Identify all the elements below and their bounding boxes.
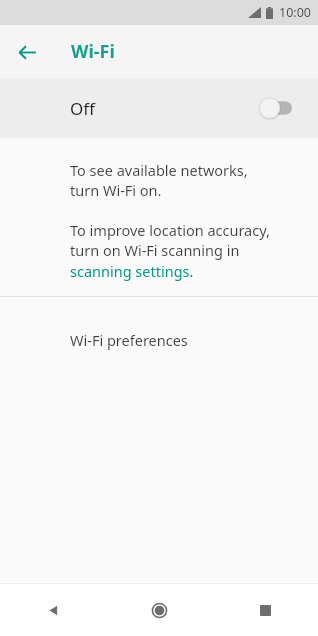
staticText: To improve location accuracy, turn on Wi…	[70, 220, 270, 282]
staticText: To see available networks, turn Wi-Fi on…	[70, 160, 248, 201]
button[interactable]: Recents	[212, 584, 318, 636]
button[interactable]: Home	[106, 584, 212, 636]
other: Wi-Fi toggle	[259, 97, 293, 119]
staticText: Off	[70, 97, 95, 120]
button[interactable]: Back	[0, 584, 106, 636]
button[interactable]: To improve location accuracy, turn on Wi…	[70, 220, 270, 282]
staticText: 10:00	[279, 4, 311, 21]
staticText: Wi-Fi	[71, 39, 115, 64]
staticText: Wi-Fi preferences	[70, 330, 188, 350]
button[interactable]: Back	[9, 34, 45, 70]
button[interactable]: Wi-Fi preferences	[0, 297, 318, 383]
button[interactable]: Off	[0, 78, 318, 138]
